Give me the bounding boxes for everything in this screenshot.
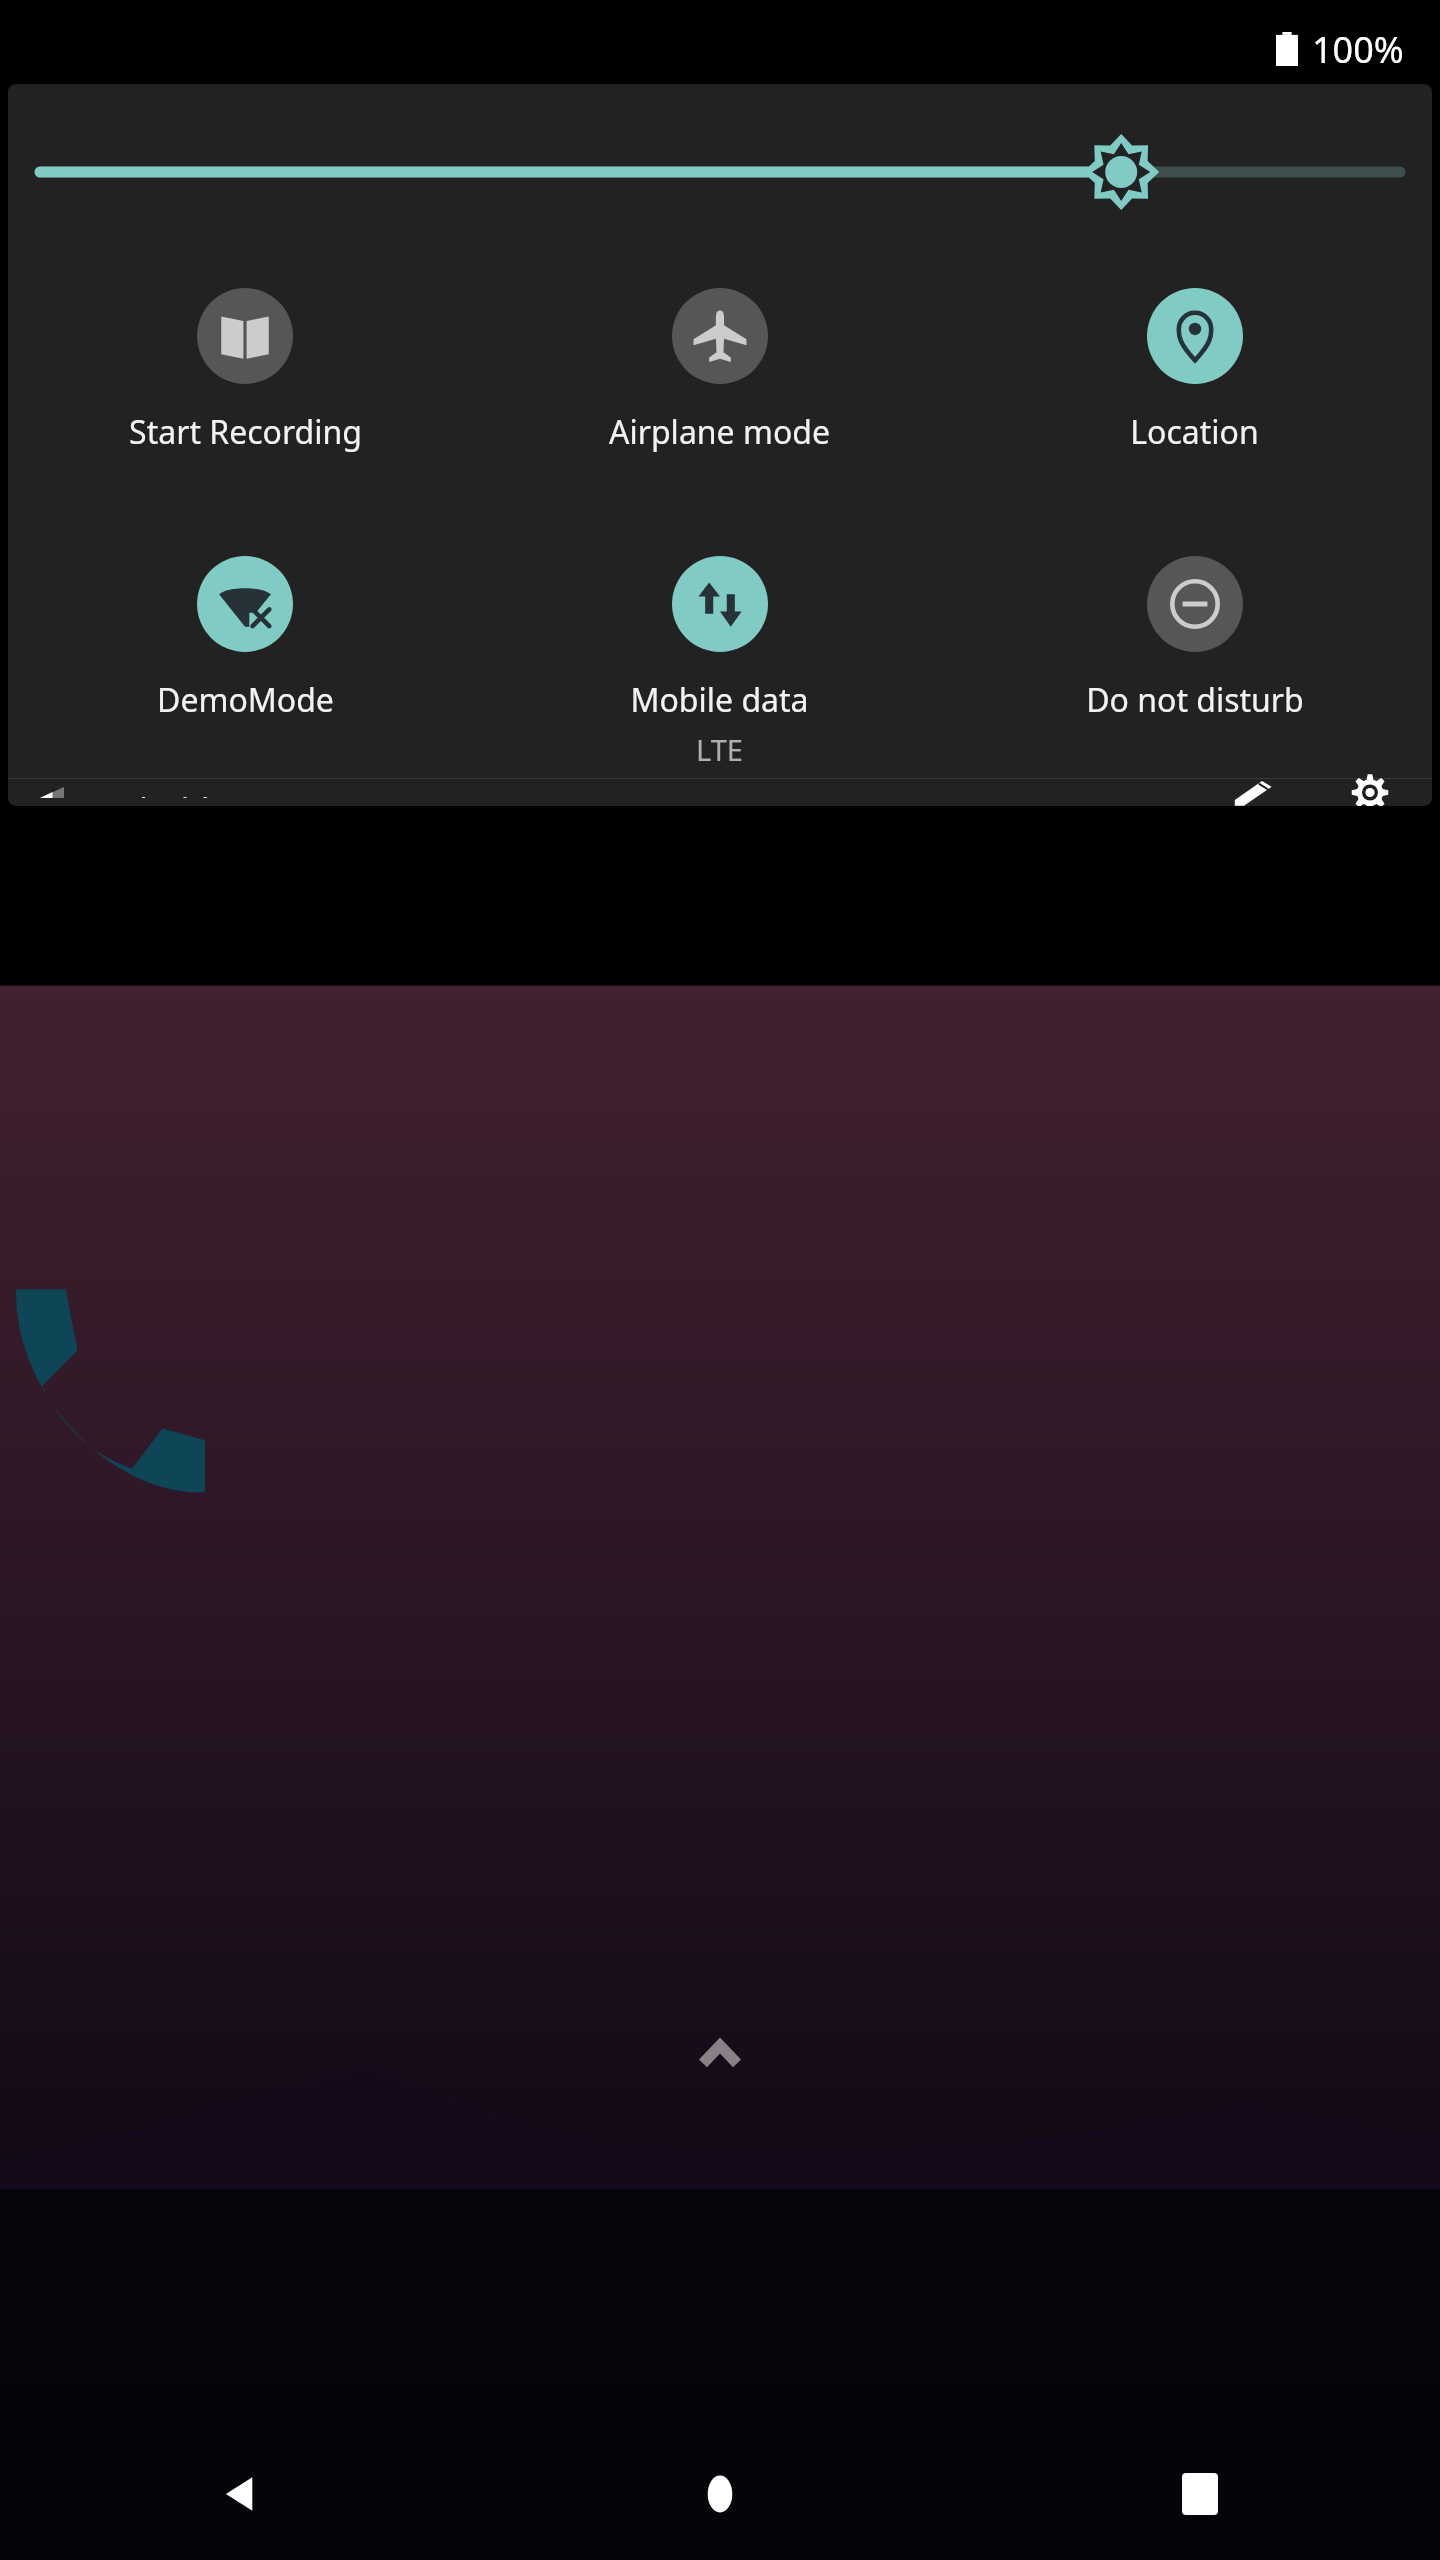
- button[interactable]: Start Recording: [8, 260, 482, 528]
- button[interactable]: Android: [34, 779, 216, 806]
- button[interactable]: Airplane mode: [482, 260, 957, 528]
- button[interactable]: Edit tiles: [1218, 779, 1290, 806]
- button[interactable]: DemoMode: [8, 528, 482, 778]
- staticText: Start Recording: [129, 410, 362, 454]
- button[interactable]: Settings: [1334, 779, 1406, 806]
- button[interactable]: Home: [480, 2428, 960, 2560]
- staticText: Mobile data: [630, 678, 809, 722]
- staticText: 100%: [1312, 25, 1404, 74]
- button[interactable]: Brightness: [8, 84, 1432, 260]
- button[interactable]: Location: [957, 260, 1432, 528]
- staticText: DemoMode: [157, 678, 334, 722]
- button[interactable]: Back: [0, 2428, 480, 2560]
- staticText: LTE: [696, 730, 743, 769]
- staticText: Android: [86, 787, 210, 798]
- staticText: Airplane mode: [609, 410, 830, 454]
- button[interactable]: Recent apps: [960, 2428, 1440, 2560]
- button[interactable]: Mobile data: [482, 528, 957, 778]
- staticText: Do not disturb: [1086, 678, 1304, 722]
- button[interactable]: Do not disturb: [957, 528, 1432, 778]
- staticText: Location: [1130, 410, 1259, 454]
